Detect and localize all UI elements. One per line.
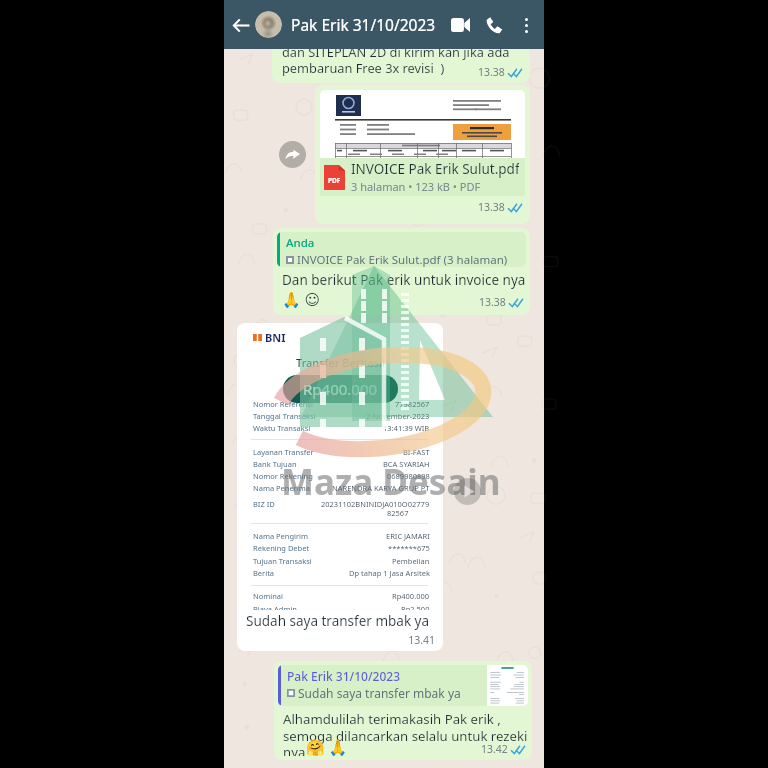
staticText: 77982567 <box>395 399 430 409</box>
staticText: 0689980898 <box>387 471 430 481</box>
staticText: Berita <box>253 568 275 578</box>
staticText: Nama Pengirim <box>253 531 309 541</box>
button[interactable]: More options <box>511 10 541 40</box>
staticText: Dp tahap 1 Jasa Arsitek <box>349 568 430 578</box>
button[interactable]: Pak Erik 31/10/2023 <box>291 14 436 35</box>
staticText: 82567 <box>387 508 409 518</box>
staticText: 🤗 🙏 <box>306 737 348 757</box>
staticText: dan SITEPLAN 2D di kirim kan jika ada pe… <box>282 43 510 77</box>
staticText: 20231102BNINIDJA010O02779 <box>321 499 430 509</box>
staticText: Anda <box>286 235 315 251</box>
staticText: Sudah saya transfer mbak ya <box>246 612 430 630</box>
staticText: Pembelian <box>392 556 430 566</box>
staticText: Rp2.500 <box>401 604 430 610</box>
staticText: Bank Tujuan <box>253 459 297 469</box>
staticText: 13.38 <box>478 65 505 79</box>
staticText: Sudah saya transfer mbak ya <box>298 685 461 701</box>
button[interactable]: Forward <box>279 141 306 168</box>
staticText: *******675 <box>388 543 430 553</box>
staticText: 13.38 <box>478 200 505 214</box>
staticText: Layanan Transfer <box>253 447 314 457</box>
staticText: 13.41 <box>246 633 435 647</box>
staticText: Dan berikut Pak erik untuk invoice nya <box>282 271 526 289</box>
button[interactable]: BNI <box>237 323 443 651</box>
button[interactable]: Pak Erik 31/10/2023 <box>274 661 532 760</box>
staticText: PDF <box>328 176 341 185</box>
staticText: Waktu Transaksi <box>253 423 311 433</box>
staticText: Rp400.000 <box>303 379 378 399</box>
staticText: BI-FAST <box>403 447 430 457</box>
staticText: 🙏 ☺ <box>282 289 321 309</box>
staticText: 13:41:39 WIB <box>383 423 430 433</box>
button[interactable]: PDF <box>315 85 530 224</box>
staticText: Transfer Berhasil <box>296 355 385 370</box>
staticText: Pak Erik 31/10/2023 <box>287 668 400 684</box>
staticText: 3 halaman • 123 kB • PDF <box>351 179 481 194</box>
staticText: INVOICE Pak Erik Sulut.pdf (3 halaman) <box>297 252 508 267</box>
staticText: Rekening Debet <box>253 543 310 553</box>
staticText: INVOICE Pak Erik Sulut.pdf <box>351 160 519 178</box>
staticText: Alhamdulilah terimakasih Pak erik , semo… <box>283 710 528 756</box>
staticText: Tujuan Transaksi <box>253 556 312 566</box>
staticText: 13.38 <box>479 295 506 309</box>
button[interactable]: Call <box>477 8 511 42</box>
staticText: Tanggal Transaksi <box>253 411 316 421</box>
staticText: Rp400.000 <box>392 591 430 601</box>
staticText: BNI <box>265 330 286 345</box>
staticText: 2-November-2023 <box>366 411 430 421</box>
staticText: Nomor Referensi <box>253 399 313 409</box>
staticText: Nama Penerima <box>253 483 310 493</box>
button[interactable]: Profile photo <box>255 11 282 38</box>
button[interactable]: Anda <box>273 228 530 315</box>
staticText: Nomor Rekening <box>253 471 313 481</box>
staticText: BCA SYARIAH <box>383 459 430 469</box>
button[interactable]: Video call <box>443 8 477 42</box>
staticText: BIZ ID <box>253 499 275 509</box>
button[interactable]: dan SITEPLAN 2D di kirim kan jika ada pe… <box>272 22 530 83</box>
staticText: Biaya Admin <box>253 604 297 610</box>
button[interactable]: Back <box>227 11 255 39</box>
staticText: ERIC JAMARI <box>386 531 430 541</box>
staticText: Nominal <box>253 591 283 601</box>
staticText: NARENDRA KARYA GRUP PT <box>332 483 430 493</box>
staticText: Maza Desain <box>281 458 501 506</box>
staticText: 13.42 <box>481 742 508 756</box>
